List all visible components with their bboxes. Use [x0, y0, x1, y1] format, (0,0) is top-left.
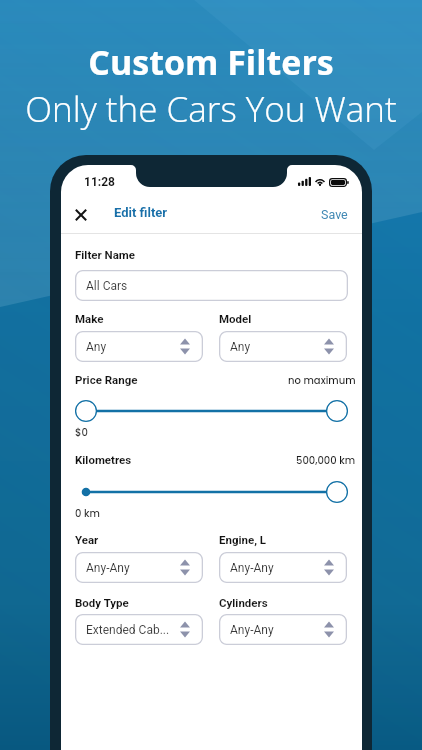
staticText: Extended Cab...	[86, 623, 170, 637]
staticText: Any-Any	[230, 561, 274, 575]
staticText: All Cars	[86, 279, 128, 293]
staticText: Model	[219, 312, 252, 325]
staticText: Cylinders	[219, 596, 268, 609]
button[interactable]: Save	[321, 207, 348, 222]
button[interactable]: Any-Any	[219, 552, 347, 583]
staticText: Engine, L	[219, 533, 267, 546]
button[interactable]: Close	[71, 205, 91, 225]
button[interactable]: Any-Any	[75, 552, 203, 583]
staticText: Any	[230, 340, 251, 354]
staticText: no maximum	[288, 373, 356, 387]
staticText: 11:28	[84, 175, 115, 189]
button[interactable]	[75, 481, 348, 503]
staticText: $0	[75, 425, 88, 439]
button[interactable]: Extended Cab...	[75, 614, 203, 645]
staticText: Kilometres	[75, 453, 132, 466]
staticText: Any	[86, 340, 107, 354]
button[interactable]: Edit filter	[114, 205, 168, 220]
staticText: Price Range	[75, 373, 138, 386]
button[interactable]	[75, 400, 348, 422]
staticText: 500,000 km	[296, 453, 356, 467]
staticText: Any-Any	[230, 623, 274, 637]
staticText: Body Type	[75, 596, 129, 609]
button[interactable]: Any	[75, 331, 203, 362]
button[interactable]: Any-Any	[219, 614, 347, 645]
staticText: Custom Filters	[88, 39, 334, 85]
button[interactable]: All Cars	[75, 270, 348, 301]
staticText: Make	[75, 312, 104, 325]
staticText: Year	[75, 533, 99, 546]
button[interactable]: Any	[219, 331, 347, 362]
staticText: Any-Any	[86, 561, 130, 575]
staticText: 0 km	[75, 506, 100, 520]
staticText: Only the Cars You Want	[25, 85, 397, 133]
staticText: Filter Name	[75, 248, 136, 261]
